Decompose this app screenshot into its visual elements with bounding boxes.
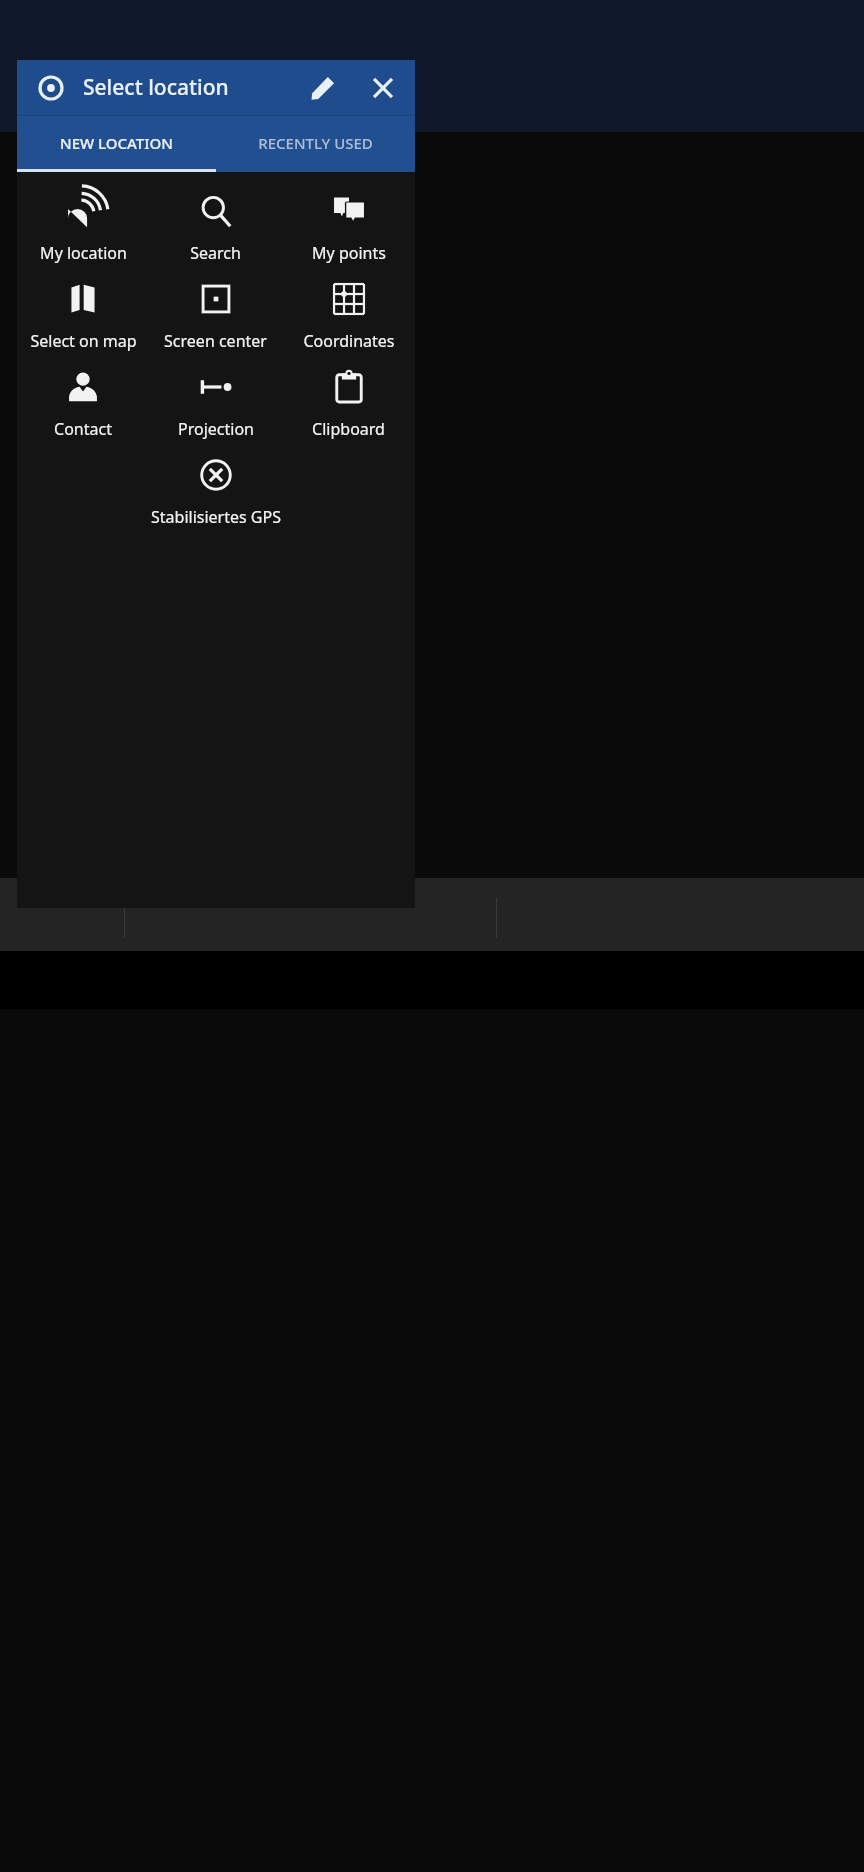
staticText: NEW LOCATION: [60, 133, 173, 153]
button[interactable]: My points: [282, 186, 415, 274]
button[interactable]: Search: [149, 186, 282, 274]
button[interactable]: Edit: [299, 64, 347, 112]
button[interactable]: Location: [27, 64, 75, 112]
button[interactable]: Stabilisiertes GPS: [149, 450, 282, 538]
button[interactable]: Contact: [17, 362, 149, 450]
staticText: Screen center: [164, 330, 267, 352]
staticText: Coordinates: [303, 330, 395, 352]
button[interactable]: NEW LOCATION: [17, 116, 216, 169]
staticText: Contact: [54, 418, 112, 440]
button[interactable]: Close: [359, 64, 407, 112]
staticText: Select location: [83, 73, 229, 102]
staticText: RECENTLY USED: [258, 133, 373, 153]
button[interactable]: My location: [17, 186, 149, 274]
staticText: Clipboard: [312, 418, 385, 440]
staticText: My points: [312, 242, 386, 264]
button[interactable]: Select on map: [17, 274, 149, 362]
staticText: Search: [190, 242, 241, 264]
staticText: Select on map: [30, 330, 137, 352]
staticText: My location: [40, 242, 127, 264]
button[interactable]: Coordinates: [282, 274, 415, 362]
button[interactable]: Projection: [149, 362, 282, 450]
staticText: Stabilisiertes GPS: [151, 506, 281, 528]
button[interactable]: Clipboard: [282, 362, 415, 450]
button[interactable]: RECENTLY USED: [216, 116, 415, 169]
staticText: Projection: [178, 418, 254, 440]
button[interactable]: Screen center: [149, 274, 282, 362]
